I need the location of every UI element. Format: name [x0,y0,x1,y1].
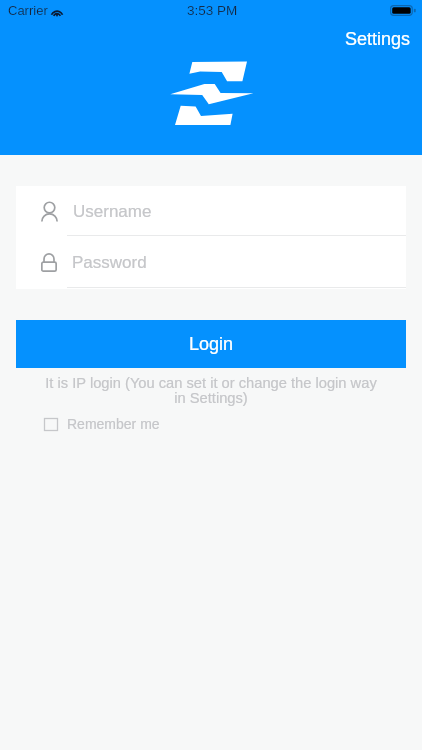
staticText: It is IP login (You can set it or change… [41,375,381,407]
button[interactable]: Remember me [44,414,160,434]
staticText: Username [73,202,152,221]
button[interactable]: Settings [341,26,415,52]
staticText: Password [72,253,147,272]
button[interactable]: Password [16,236,406,288]
staticText: Login [189,334,234,354]
staticText: Carrier [8,3,48,18]
button[interactable]: Login [16,320,406,368]
staticText: Settings [345,29,411,49]
button[interactable]: Username [16,186,406,236]
staticText: 3:53 PM [187,3,238,18]
staticText: Remember me [67,416,160,432]
